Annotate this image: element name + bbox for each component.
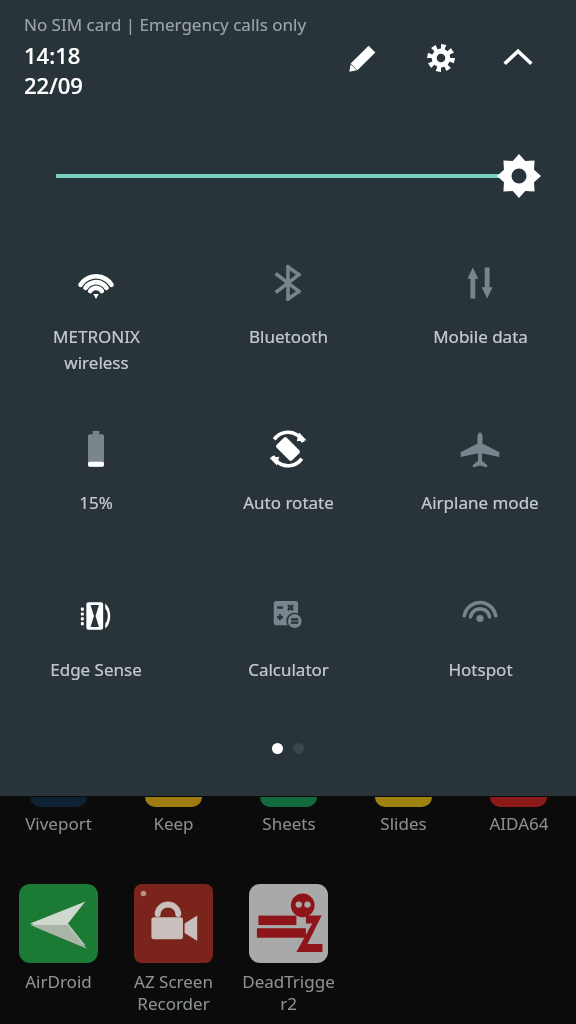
staticText: Keep bbox=[153, 812, 194, 835]
button[interactable]: Airplane mode bbox=[384, 428, 576, 514]
button[interactable]: 15% bbox=[0, 428, 192, 514]
staticText: 22/09 bbox=[24, 70, 83, 100]
button[interactable]: Hotspot bbox=[384, 595, 576, 681]
button[interactable]: DeadTrigge r2 bbox=[231, 884, 346, 1015]
button[interactable]: Settings bbox=[417, 34, 465, 82]
staticText: AIDA64 bbox=[489, 812, 549, 835]
button[interactable]: Collapse bbox=[494, 34, 542, 82]
staticText: AirDroid bbox=[25, 970, 92, 993]
staticText: Calculator bbox=[248, 658, 329, 681]
staticText: Mobile data bbox=[433, 325, 528, 348]
button[interactable]: METRONIX wireless bbox=[0, 262, 192, 374]
staticText: Auto rotate bbox=[243, 491, 334, 514]
button[interactable]: Mobile data bbox=[384, 262, 576, 348]
staticText: Sheets bbox=[262, 812, 316, 835]
button[interactable]: Edit bbox=[339, 34, 387, 82]
staticText: 14:18 bbox=[24, 40, 81, 70]
staticText: No SIM card | Emergency calls only bbox=[24, 13, 307, 36]
staticText: Viveport bbox=[25, 812, 92, 835]
staticText: METRONIX wireless bbox=[53, 325, 140, 374]
button[interactable]: Edge Sense bbox=[0, 595, 192, 681]
button[interactable]: Calculator bbox=[192, 595, 384, 681]
button[interactable]: AZ Screen Recorder bbox=[116, 884, 231, 1015]
staticText: Hotspot bbox=[448, 658, 513, 681]
button[interactable]: Brightness bbox=[0, 146, 576, 206]
staticText: Slides bbox=[380, 812, 427, 835]
staticText: AZ Screen Recorder bbox=[134, 970, 213, 1015]
button[interactable]: Auto rotate bbox=[192, 428, 384, 514]
staticText: Bluetooth bbox=[249, 325, 328, 348]
staticText: DeadTrigge r2 bbox=[242, 970, 335, 1015]
button[interactable]: AirDroid bbox=[0, 884, 116, 993]
staticText: 15% bbox=[79, 491, 113, 514]
staticText: Edge Sense bbox=[50, 658, 142, 681]
staticText: Airplane mode bbox=[421, 491, 539, 514]
button[interactable]: Bluetooth bbox=[192, 262, 384, 348]
